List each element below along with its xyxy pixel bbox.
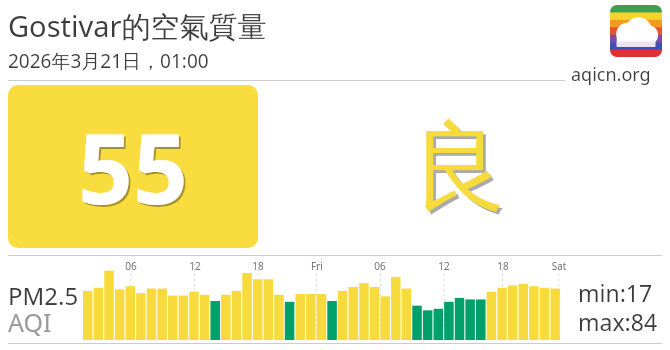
button[interactable]: 55: [8, 85, 258, 248]
staticText: 12: [433, 259, 455, 273]
staticText: 良: [411, 108, 507, 218]
staticText: 18: [247, 259, 269, 273]
staticText: 良: [414, 111, 510, 221]
staticText: 12: [184, 259, 206, 273]
staticText: 06: [120, 259, 142, 273]
staticText: PM2.5: [8, 279, 79, 312]
staticText: min:17: [578, 277, 653, 308]
staticText: Fri: [306, 259, 328, 273]
staticText: Gostivar的空氣質量: [8, 6, 267, 46]
staticText: 06: [369, 259, 391, 273]
staticText: 2026年3月21日，01:00: [8, 48, 209, 74]
staticText: 55: [78, 101, 188, 232]
button[interactable]: aqicn.org: [571, 62, 651, 87]
staticText: max:84: [578, 306, 658, 337]
staticText: AQI: [8, 305, 52, 339]
staticText: 18: [492, 259, 514, 273]
staticText: 55: [80, 103, 190, 234]
staticText: Sat: [548, 259, 570, 273]
button[interactable]: aqicn.org logo: [610, 5, 662, 57]
